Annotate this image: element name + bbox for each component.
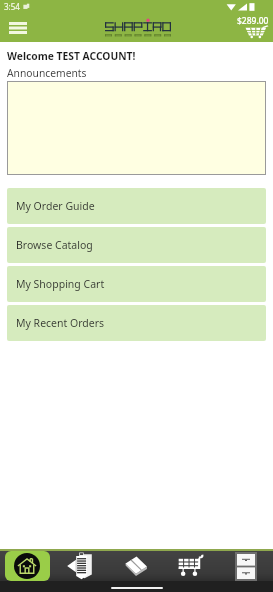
staticText: My Recent Orders — [16, 316, 105, 330]
staticText: Welcome TEST ACCOUNT! — [7, 49, 136, 63]
staticText: My Order Guide — [16, 199, 95, 213]
staticText: Announcements — [7, 66, 87, 80]
button[interactable]: Order Guide — [54, 551, 108, 581]
button[interactable]: Home — [0, 551, 54, 581]
button[interactable]: Shopping Cart — [163, 551, 218, 581]
staticText: Browse Catalog — [16, 238, 93, 252]
button[interactable]: Catalog — [108, 551, 163, 581]
button[interactable]: Recent Orders — [218, 551, 273, 581]
button[interactable]: My Recent Orders — [7, 305, 266, 341]
staticText: $289.00 — [237, 15, 269, 27]
button[interactable]: Menu — [2, 15, 34, 41]
staticText: My Shopping Cart — [16, 277, 105, 291]
button[interactable]: My Order Guide — [7, 188, 266, 224]
staticText: 3:54 — [4, 1, 20, 12]
button[interactable]: Browse Catalog — [7, 227, 266, 263]
button[interactable]: My Shopping Cart — [7, 266, 266, 302]
button[interactable]: Cart — [233, 15, 273, 40]
